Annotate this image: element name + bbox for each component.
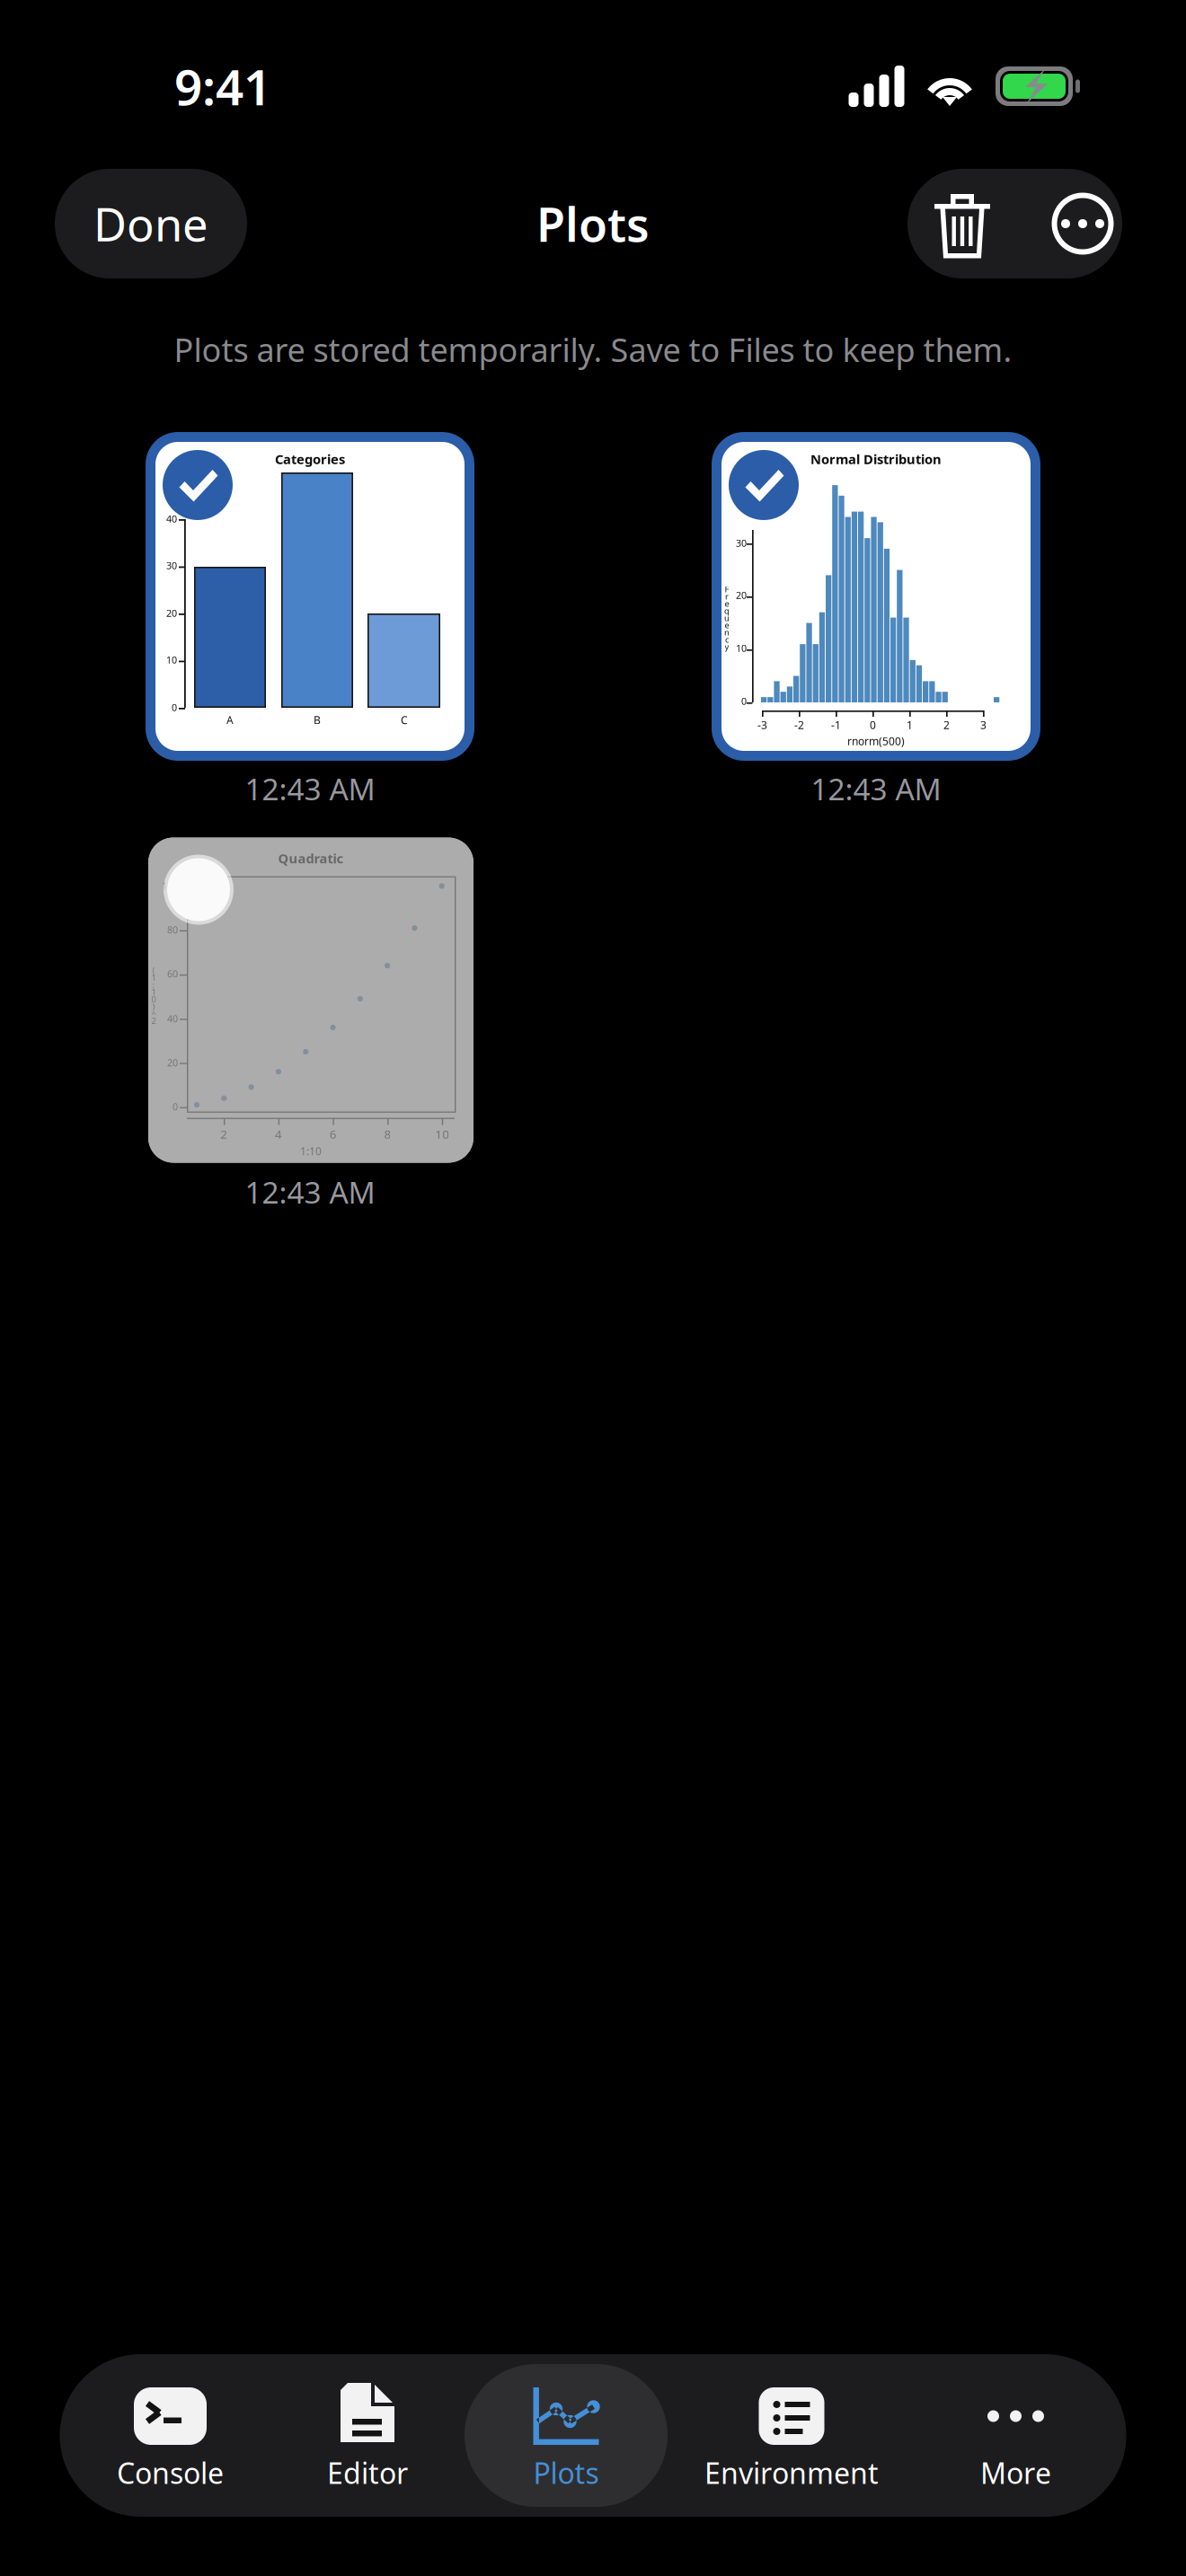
button[interactable]: Quadratic: [146, 835, 474, 1207]
staticText: 40: [167, 1012, 178, 1025]
staticText: 30: [166, 559, 177, 572]
staticText: C: [401, 713, 408, 727]
staticText: 2: [220, 1126, 228, 1142]
staticText: More: [980, 2454, 1051, 2492]
staticText: Plots: [533, 2454, 599, 2492]
staticText: e: [725, 620, 729, 631]
staticText: 3: [980, 718, 987, 732]
staticText: 1:10: [300, 1144, 322, 1158]
staticText: 0: [741, 695, 747, 707]
staticText: Quadratic: [278, 850, 344, 867]
staticText: F: [725, 584, 729, 595]
staticText: Categories: [275, 450, 345, 468]
staticText: Environment: [704, 2454, 879, 2492]
staticText: 9:41: [174, 54, 271, 119]
staticText: 20: [166, 607, 177, 619]
button[interactable]: Console: [60, 2364, 281, 2507]
staticText: 30: [736, 537, 747, 549]
staticText: 2: [943, 718, 950, 732]
staticText: -1: [831, 718, 841, 732]
staticText: Done: [93, 193, 208, 254]
staticText: (: [152, 965, 155, 976]
staticText: 10: [736, 642, 747, 654]
staticText: q: [724, 605, 730, 616]
staticText: 1: [151, 972, 156, 983]
staticText: r: [725, 591, 729, 602]
staticText: 80: [167, 923, 178, 936]
staticText: Plots: [536, 193, 650, 255]
button[interactable]: Normal Distribution: [712, 432, 1040, 804]
staticText: 0: [870, 718, 876, 732]
staticText: 12:43 AM: [811, 769, 941, 809]
staticText: y: [725, 641, 729, 652]
staticText: c: [725, 634, 729, 645]
button[interactable]: Delete plots and more options: [907, 169, 1122, 278]
staticText: B: [314, 713, 321, 727]
staticText: 10: [166, 653, 177, 666]
staticText: 20: [167, 1056, 178, 1069]
staticText: A: [226, 713, 234, 727]
staticText: -3: [757, 718, 767, 732]
staticText: u: [724, 612, 730, 624]
staticText: 1: [151, 986, 156, 998]
staticText: 6: [330, 1126, 337, 1142]
staticText: :: [152, 979, 155, 990]
staticText: 0: [173, 1100, 178, 1113]
button[interactable]: Plots: [454, 2364, 678, 2507]
button[interactable]: Categories: [146, 432, 474, 804]
staticText: Plots are stored temporarily. Save to Fi…: [174, 328, 1012, 371]
staticText: 0: [151, 994, 156, 1005]
staticText: 8: [384, 1126, 391, 1142]
staticText: ^: [151, 1008, 156, 1019]
staticText: Normal Distribution: [810, 450, 942, 468]
staticText: 12:43 AM: [245, 769, 375, 809]
staticText: Console: [117, 2454, 224, 2492]
button[interactable]: More: [905, 2364, 1126, 2507]
staticText: -2: [794, 718, 804, 732]
button[interactable]: Editor: [281, 2364, 454, 2507]
staticText: 40: [166, 512, 177, 525]
staticText: Editor: [327, 2454, 408, 2492]
staticText: 4: [275, 1126, 282, 1142]
staticText: ): [152, 1001, 155, 1012]
staticText: 10: [435, 1126, 449, 1142]
staticText: 60: [167, 967, 178, 980]
staticText: rnorm(500): [847, 734, 905, 748]
staticText: e: [725, 598, 729, 609]
staticText: 20: [736, 589, 747, 601]
staticText: n: [724, 627, 730, 638]
staticText: 1: [907, 718, 913, 732]
staticText: 0: [172, 701, 177, 714]
staticText: 100: [162, 879, 178, 892]
staticText: 2: [151, 1015, 156, 1026]
button[interactable]: Done: [55, 169, 247, 278]
staticText: 12:43 AM: [245, 1172, 375, 1212]
button[interactable]: Environment: [678, 2364, 905, 2507]
